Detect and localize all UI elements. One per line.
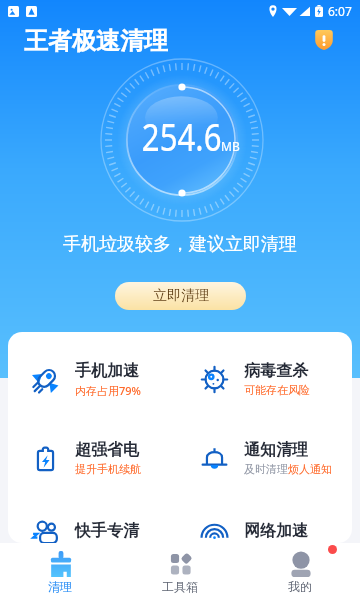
button[interactable]: 通知清理 [180,440,352,476]
button[interactable]: 立即清理 [115,282,246,310]
button[interactable]: 工具箱 [120,550,240,594]
staticText: 可能存在风险 [244,383,310,397]
button[interactable]: Security warning [310,26,338,54]
staticText: 快手专清 [75,521,139,541]
staticText: 254.6 [142,110,222,162]
button[interactable]: 超强省电 [8,440,180,476]
staticText: 立即清理 [153,287,209,305]
button[interactable]: 快手专清 [8,519,180,543]
staticText: 清理 [48,579,72,594]
staticText: 及时清理 [244,462,288,476]
staticText: 手机加速 [75,361,139,381]
staticText: 工具箱 [162,579,198,594]
button[interactable]: 网络加速 [180,519,352,543]
staticText: 病毒查杀 [244,361,308,381]
staticText: 超强省电 [75,440,139,460]
button[interactable]: 病毒查杀 [180,361,352,397]
staticText: 我的 [288,579,312,594]
button[interactable]: 我的 [240,550,360,594]
staticText: 内存占用79% [75,383,141,398]
staticText: 6:07 [328,3,352,19]
button[interactable]: 清理 [0,550,120,594]
staticText: 提升手机续航 [75,462,141,476]
staticText: 王者极速清理 [24,26,168,54]
staticText: 通知清理 [244,440,308,460]
button[interactable]: 手机加速 [8,361,180,398]
staticText: 网络加速 [244,521,308,541]
staticText: 烦人通知 [288,462,332,476]
staticText: MB [221,138,240,154]
staticText: 手机垃圾较多，建议立即清理 [0,233,360,256]
